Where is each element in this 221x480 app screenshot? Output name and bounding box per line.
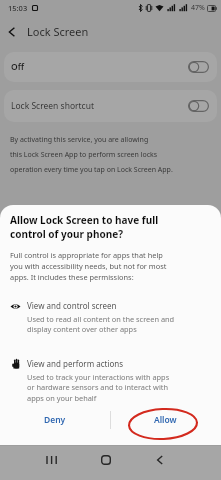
staticText: Full control is appropriate for apps tha… — [10, 250, 167, 282]
staticText: Allow Lock Screen to have full control o… — [10, 213, 159, 241]
button[interactable] — [46, 455, 58, 465]
button[interactable]: Lock Screen shortcut — [4, 90, 217, 122]
button[interactable]: Off — [4, 52, 217, 82]
staticText: Allow — [154, 414, 177, 426]
staticText: 47% — [191, 3, 205, 13]
staticText: Used to track your interactions with app… — [27, 372, 170, 403]
button[interactable]: Deny — [0, 405, 110, 435]
staticText: Lock Screen shortcut — [11, 100, 95, 112]
staticText: 15:03 — [8, 3, 28, 13]
button[interactable] — [156, 455, 164, 465]
staticText: operation every time you tap on Lock Scr… — [10, 165, 173, 175]
button[interactable] — [101, 455, 111, 465]
staticText: View and perform actions — [27, 358, 124, 369]
staticText: Used to read all content on the screen a… — [27, 314, 175, 334]
staticText: Deny — [44, 414, 66, 426]
staticText: By activating this service, you are allo… — [10, 135, 149, 145]
staticText: Off — [11, 61, 24, 73]
staticText: Lock Screen — [27, 24, 89, 39]
staticText: View and control screen — [27, 300, 117, 311]
staticText: this Lock Screen App to perform screen l… — [10, 150, 158, 160]
button[interactable] — [8, 27, 16, 37]
button[interactable]: Allow — [110, 405, 221, 435]
